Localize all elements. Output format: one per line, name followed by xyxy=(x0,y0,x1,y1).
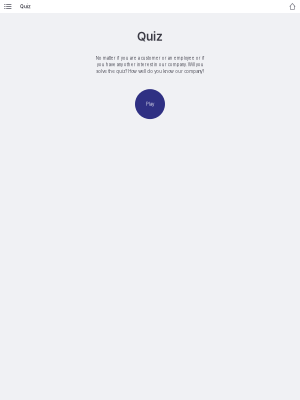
button[interactable]: Quiz xyxy=(15,1,31,12)
button[interactable]: Play xyxy=(135,89,165,119)
button[interactable]: Menu xyxy=(0,0,15,13)
staticText: No matter if you are a customer or an em… xyxy=(95,55,204,74)
staticText: Quiz xyxy=(20,4,31,9)
staticText: Play xyxy=(146,101,154,107)
staticText: Quiz xyxy=(137,29,163,43)
button[interactable]: Home xyxy=(289,0,300,13)
